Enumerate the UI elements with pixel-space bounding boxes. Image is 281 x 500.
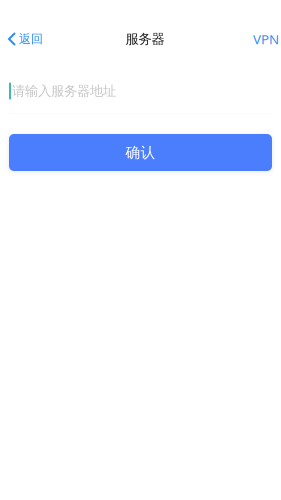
staticText: 返回 xyxy=(19,32,43,46)
button[interactable]: 请输入服务器地址 xyxy=(0,80,281,102)
staticText: 服务器 xyxy=(125,31,164,47)
staticText: 请输入服务器地址 xyxy=(12,83,116,99)
button[interactable]: 确认 xyxy=(9,134,272,171)
staticText: 确认 xyxy=(125,143,155,161)
button[interactable]: VPN xyxy=(245,22,281,56)
button[interactable]: 返回 xyxy=(0,22,51,56)
staticText: VPN xyxy=(253,30,279,48)
